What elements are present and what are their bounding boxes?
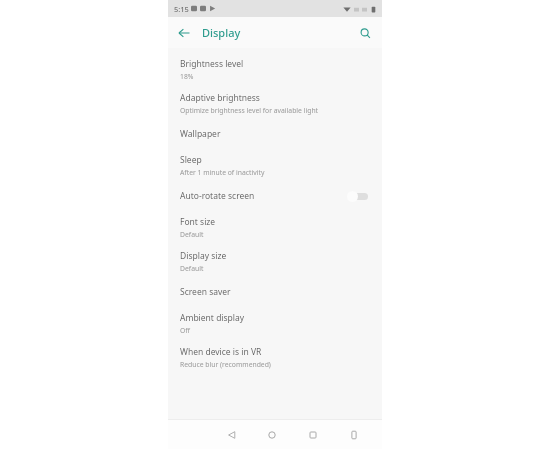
staticText: Default	[180, 230, 204, 239]
button[interactable]: Search	[354, 22, 376, 44]
staticText: Optimize brightness level for available …	[180, 106, 319, 115]
button[interactable]: Brightness level	[168, 52, 382, 86]
staticText: Screen saver	[180, 286, 231, 298]
staticText: Reduce blur (recommended)	[180, 360, 271, 369]
staticText: Adaptive brightness	[180, 92, 260, 104]
button[interactable]: Auto-rotate screen	[168, 182, 382, 210]
staticText: Font size	[180, 216, 216, 228]
staticText: Ambient display	[180, 312, 245, 324]
button[interactable]: Sleep	[168, 148, 382, 182]
staticText: Display size	[180, 250, 227, 262]
button[interactable]: Back	[173, 22, 195, 44]
staticText: 5:15	[174, 4, 189, 14]
staticText: After 1 minute of inactivity	[180, 168, 265, 177]
button[interactable]: Display size	[168, 244, 382, 278]
staticText: Display	[202, 25, 241, 40]
staticText: Off	[180, 326, 190, 335]
staticText: Sleep	[180, 154, 202, 166]
button[interactable]: Back	[212, 420, 252, 449]
staticText: Auto-rotate screen	[180, 190, 255, 202]
button[interactable]: Rotate	[333, 420, 374, 449]
button[interactable]: Auto-rotate screen toggle	[346, 188, 372, 204]
button[interactable]: Font size	[168, 210, 382, 244]
staticText: When device is in VR	[180, 346, 262, 358]
staticText: Default	[180, 264, 204, 273]
button[interactable]: Screen saver	[168, 278, 382, 306]
button[interactable]: Adaptive brightness	[168, 86, 382, 120]
button[interactable]: Ambient display	[168, 306, 382, 340]
staticText: 18%	[180, 72, 194, 81]
staticText: Brightness level	[180, 58, 244, 70]
button[interactable]: When device is in VR	[168, 340, 382, 374]
button[interactable]: Wallpaper	[168, 120, 382, 148]
staticText: Wallpaper	[180, 128, 221, 140]
button[interactable]: Recent apps	[292, 420, 333, 449]
button[interactable]: Home	[252, 420, 292, 449]
